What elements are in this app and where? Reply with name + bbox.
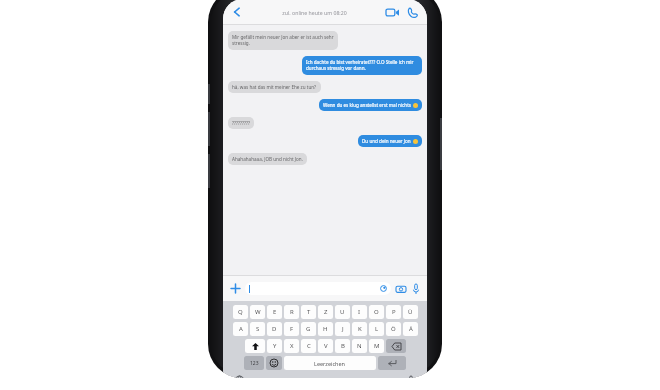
button[interactable]: Ä <box>403 322 418 336</box>
button[interactable]: R <box>284 305 299 319</box>
button[interactable]: Ü <box>403 305 418 319</box>
staticText: hä, was hat das mit meiner Ehe zu tun? <box>232 84 317 90</box>
staticText: Y <box>273 342 277 350</box>
staticText: M <box>374 342 380 350</box>
staticText: Ä <box>409 325 413 333</box>
button[interactable]: Emoji <box>266 356 282 370</box>
staticText: Ö <box>391 325 396 333</box>
button[interactable]: W <box>250 305 265 319</box>
button[interactable]: Camera <box>394 282 407 295</box>
button[interactable]: A <box>233 322 248 336</box>
staticText: R <box>290 308 294 316</box>
button[interactable]: S <box>250 322 265 336</box>
button[interactable]: Z <box>318 305 333 319</box>
button[interactable]: C <box>301 339 316 353</box>
button[interactable]: ????????? <box>228 117 254 129</box>
button[interactable]: X <box>284 339 299 353</box>
button[interactable]: L <box>369 322 384 336</box>
staticText: 123 <box>250 360 259 367</box>
staticText: Wenn du es klug anstellst erst mal nicht… <box>323 102 411 108</box>
button[interactable]: M <box>369 339 384 353</box>
button[interactable]: F <box>284 322 299 336</box>
staticText: U <box>340 308 345 316</box>
button[interactable]: Y <box>267 339 282 353</box>
button[interactable]: V <box>318 339 333 353</box>
button[interactable]: Shift <box>245 339 265 353</box>
button[interactable]: Ö <box>386 322 401 336</box>
button[interactable]: Voice message <box>409 282 422 295</box>
staticText: zul. online heute um 08:20 <box>282 9 347 16</box>
staticText: I <box>358 308 361 316</box>
staticText: L <box>375 325 379 333</box>
button[interactable]: Change keyboard <box>233 374 246 378</box>
staticText: G <box>306 325 311 333</box>
button[interactable]: Q <box>233 305 248 319</box>
staticText: W <box>255 308 261 316</box>
staticText: D <box>272 325 277 333</box>
button[interactable]: P <box>386 305 401 319</box>
button[interactable]: H <box>318 322 333 336</box>
button[interactable]: Back <box>229 4 245 20</box>
button[interactable]: Add attachment <box>228 281 242 295</box>
button[interactable]: O <box>369 305 384 319</box>
staticText: A <box>239 325 243 333</box>
staticText: O <box>374 308 379 316</box>
button[interactable]: Ich dachte du bist verheiratet??? O.O St… <box>302 56 422 75</box>
button[interactable]: Ahahahahaaa, JOB und nicht Jon. <box>228 153 307 165</box>
button[interactable]: T <box>301 305 316 319</box>
button[interactable]: Backspace <box>386 339 406 353</box>
button[interactable]: N <box>352 339 367 353</box>
staticText: X <box>290 342 294 350</box>
button[interactable] <box>245 282 391 295</box>
staticText: Ahahahahaaa, JOB und nicht Jon. <box>232 156 303 162</box>
staticText: P <box>392 308 396 316</box>
button[interactable]: Mir gefällt mein neuer Jon aber er ist a… <box>228 31 338 50</box>
button[interactable]: hä, was hat das mit meiner Ehe zu tun? <box>228 81 321 93</box>
staticText: N <box>357 342 362 350</box>
staticText: Ü <box>408 308 413 316</box>
staticText: ????????? <box>232 120 250 126</box>
button[interactable]: B <box>335 339 350 353</box>
button[interactable]: Video call <box>383 3 401 21</box>
staticText: H <box>323 325 328 333</box>
button[interactable]: 123 <box>244 356 264 370</box>
button[interactable]: K <box>352 322 367 336</box>
button[interactable]: Call <box>403 3 421 21</box>
button[interactable]: Du und dein neuer Jon <box>358 135 422 147</box>
staticText: T <box>307 308 311 316</box>
button[interactable]: E <box>267 305 282 319</box>
staticText: Ich dachte du bist verheiratet??? O.O St… <box>306 59 418 72</box>
button[interactable]: D <box>267 322 282 336</box>
staticText: Du und dein neuer Jon <box>362 138 411 144</box>
button[interactable]: G <box>301 322 316 336</box>
button[interactable]: J <box>335 322 350 336</box>
staticText: Q <box>238 308 243 316</box>
staticText: E <box>273 308 277 316</box>
button[interactable]: I <box>352 305 367 319</box>
staticText: Z <box>324 308 328 316</box>
button[interactable]: U <box>335 305 350 319</box>
staticText: C <box>307 342 311 350</box>
button[interactable]: Leerzeichen <box>284 356 376 370</box>
staticText: K <box>358 325 362 333</box>
staticText: J <box>342 325 344 333</box>
staticText: Mir gefällt mein neuer Jon aber er ist a… <box>232 34 334 47</box>
button[interactable]: Return <box>378 356 406 370</box>
staticText: F <box>290 325 294 333</box>
button[interactable]: Dictation <box>404 374 417 378</box>
staticText: V <box>324 342 328 350</box>
staticText: Leerzeichen <box>314 360 346 367</box>
staticText: S <box>256 325 260 333</box>
button[interactable]: Wenn du es klug anstellst erst mal nicht… <box>319 99 422 111</box>
staticText: B <box>341 342 345 350</box>
